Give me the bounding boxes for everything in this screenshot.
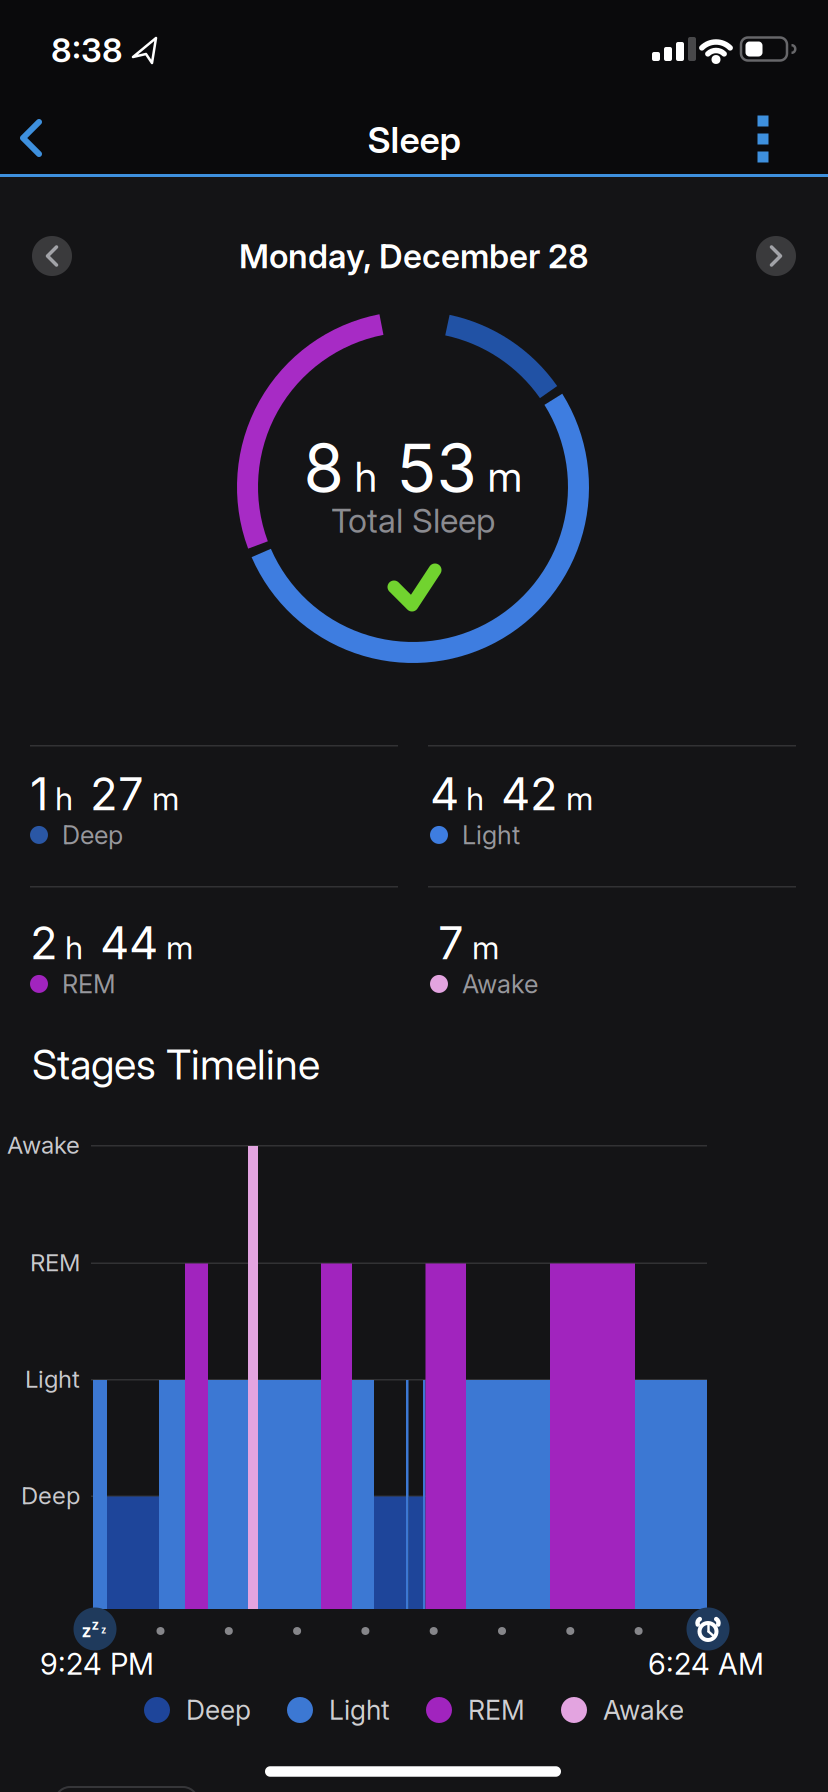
button[interactable]: Back bbox=[18, 118, 62, 162]
staticText: Deep bbox=[62, 820, 123, 850]
staticText: h bbox=[354, 452, 377, 501]
staticText: h bbox=[65, 929, 83, 966]
button[interactable]: Previous day bbox=[32, 236, 72, 276]
staticText: 8:38 bbox=[51, 30, 123, 70]
staticText: REM bbox=[62, 969, 116, 999]
staticText: m bbox=[487, 452, 522, 501]
staticText: 42 bbox=[501, 767, 558, 820]
staticText: Awake bbox=[7, 1131, 80, 1159]
staticText: 2 bbox=[30, 916, 58, 969]
staticText: m bbox=[152, 780, 179, 817]
staticText: 27 bbox=[90, 767, 144, 820]
staticText: Deep bbox=[186, 1694, 251, 1726]
staticText: REM bbox=[30, 1248, 80, 1277]
button[interactable]: More options bbox=[741, 112, 785, 166]
staticText: 53 bbox=[396, 429, 476, 507]
staticText: Monday, December 28 bbox=[239, 236, 589, 276]
staticText: REM bbox=[468, 1694, 525, 1726]
button[interactable]: More bbox=[55, 1787, 198, 1792]
staticText: z bbox=[81, 1621, 91, 1641]
button[interactable]: Next day bbox=[756, 236, 796, 276]
staticText: 1 bbox=[30, 767, 48, 820]
staticText: 4 bbox=[430, 767, 459, 820]
staticText: z bbox=[91, 1617, 99, 1633]
staticText: Total Sleep bbox=[331, 501, 495, 540]
staticText: Sleep bbox=[367, 119, 460, 161]
staticText: Light bbox=[25, 1365, 80, 1393]
staticText: 44 bbox=[100, 916, 158, 969]
staticText: Deep bbox=[21, 1481, 80, 1510]
staticText: Stages Timeline bbox=[32, 1040, 320, 1089]
staticText: m bbox=[166, 929, 193, 966]
staticText: m bbox=[566, 780, 593, 817]
staticText: m bbox=[472, 929, 499, 966]
staticText: z bbox=[101, 1624, 106, 1635]
staticText: Awake bbox=[603, 1694, 684, 1726]
staticText: 9:24 PM bbox=[40, 1647, 154, 1681]
staticText: Light bbox=[462, 820, 520, 850]
staticText: h bbox=[466, 780, 484, 817]
staticText: 8 bbox=[303, 429, 343, 507]
staticText: 7 bbox=[438, 916, 464, 969]
staticText: h bbox=[55, 780, 73, 817]
staticText: Awake bbox=[462, 969, 538, 999]
staticText: Light bbox=[329, 1694, 390, 1726]
staticText: 6:24 AM bbox=[648, 1647, 764, 1681]
